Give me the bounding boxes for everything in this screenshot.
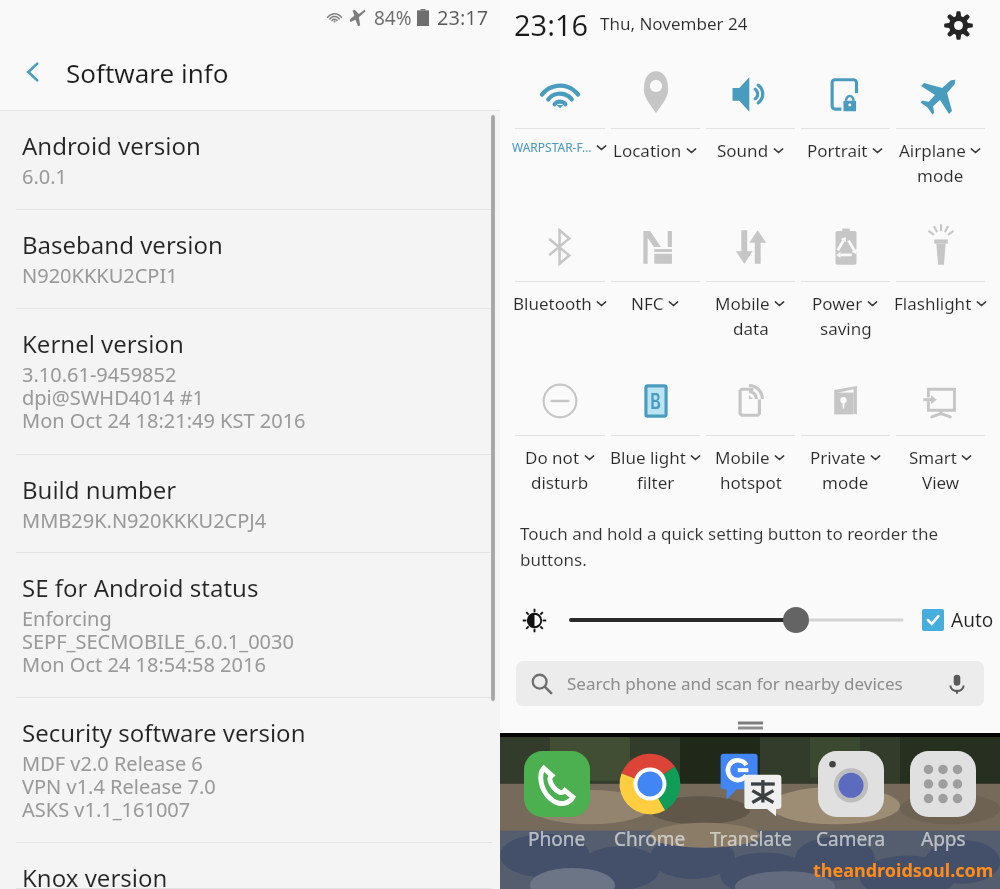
staticText: Security software version — [22, 716, 306, 749]
staticText: Mobile — [715, 292, 770, 315]
button[interactable]: Apps — [910, 751, 976, 852]
staticText: Sound — [717, 139, 769, 162]
staticText: WARPSTAR-F… — [512, 139, 592, 155]
staticText: Auto — [951, 607, 994, 633]
staticText: hotspot — [720, 471, 782, 494]
staticText: Blue light — [610, 446, 686, 469]
button[interactable]: Settings — [940, 7, 976, 43]
button[interactable]: Portrait — [798, 58, 893, 211]
button[interactable]: Kernel version — [0, 309, 500, 455]
staticText: Kernel version — [22, 327, 184, 360]
other: Back — [0, 34, 66, 110]
staticText: Software info — [66, 55, 229, 90]
staticText: 6.0.1 — [22, 163, 68, 190]
staticText: Bluetooth — [513, 292, 592, 315]
staticText: Camera — [816, 826, 886, 852]
staticText: Knox version — [22, 861, 168, 889]
staticText: SE for Android status — [22, 571, 259, 604]
staticText: Search phone and scan for nearby devices — [567, 672, 903, 695]
staticText: Location — [613, 139, 682, 162]
button[interactable]: Blue light — [608, 365, 703, 518]
staticText: Mobile — [715, 446, 770, 469]
staticText: Private — [810, 446, 866, 469]
staticText: View — [922, 471, 960, 494]
button[interactable]: Chrome — [614, 751, 686, 852]
staticText: dpi@SWHD4014 #1 — [22, 384, 205, 411]
staticText: Touch and hold a quick setting button to… — [520, 522, 986, 571]
staticText: Enforcing — [22, 605, 112, 632]
staticText: Android version — [22, 129, 201, 162]
button[interactable]: Search phone and scan for nearby devices — [516, 661, 984, 706]
staticText: Smart — [909, 446, 957, 469]
staticText: Mon Oct 24 18:54:58 2016 — [22, 651, 266, 678]
button[interactable]: Smart — [893, 365, 988, 518]
button[interactable]: Location — [608, 58, 703, 211]
staticText: filter — [637, 471, 675, 494]
staticText: Build number — [22, 473, 177, 506]
button[interactable]: Power — [798, 211, 893, 364]
button[interactable]: Android version — [0, 111, 500, 210]
button[interactable]: Do not — [512, 365, 608, 518]
staticText: ASKS v1.1_161007 — [22, 796, 191, 823]
staticText: MDF v2.0 Release 6 — [22, 750, 203, 777]
button[interactable]: Build number — [0, 455, 500, 553]
staticText: 23:16 — [514, 5, 589, 44]
staticText: saving — [820, 317, 872, 340]
staticText: Thu, November 24 — [600, 12, 748, 35]
staticText: disturb — [531, 471, 589, 494]
button[interactable]: Auto — [922, 607, 994, 633]
button[interactable]: NFC — [608, 211, 703, 364]
button[interactable]: WARPSTAR-F… — [512, 58, 608, 211]
staticText: Portrait — [807, 139, 868, 162]
staticText: mode — [822, 471, 869, 494]
button[interactable]: Flashlight — [893, 211, 988, 364]
staticText: 84% — [374, 5, 412, 31]
button[interactable]: SE for Android status — [0, 553, 500, 698]
button[interactable]: Back — [0, 34, 500, 110]
button[interactable]: Brightness slider — [565, 601, 910, 639]
staticText: 3.10.61-9459852 — [22, 361, 177, 388]
button[interactable]: Phone — [524, 751, 590, 852]
staticText: Baseband version — [22, 228, 223, 261]
staticText: MMB29K.N920KKKU2CPJ4 — [22, 507, 267, 534]
staticText: Mon Oct 24 18:21:49 KST 2016 — [22, 407, 306, 434]
staticText: mode — [917, 164, 964, 187]
staticText: 23:17 — [437, 4, 489, 31]
staticText: Power — [812, 292, 863, 315]
button[interactable]: Translate — [710, 751, 792, 852]
staticText: NFC — [631, 292, 664, 315]
staticText: SEPF_SECMOBILE_6.0.1_0030 — [22, 628, 294, 655]
staticText: Apps — [921, 826, 966, 852]
button[interactable]: Camera — [816, 751, 886, 852]
button[interactable]: Mobile — [703, 211, 798, 364]
staticText: theandroidsoul.com — [813, 858, 994, 883]
staticText: Do not — [525, 446, 580, 469]
staticText: Airplane — [899, 139, 966, 162]
button[interactable]: Bluetooth — [512, 211, 608, 364]
staticText: N920KKKU2CPI1 — [22, 262, 178, 289]
staticText: VPN v1.4 Release 7.0 — [22, 773, 216, 800]
button[interactable]: Mobile — [703, 365, 798, 518]
staticText: Translate — [710, 826, 792, 852]
button[interactable]: Private — [798, 365, 893, 518]
staticText: Flashlight — [894, 292, 972, 315]
staticText: data — [733, 317, 769, 340]
button[interactable]: Knox version — [0, 843, 500, 889]
button[interactable]: Baseband version — [0, 210, 500, 309]
button[interactable]: Security software version — [0, 698, 500, 843]
button[interactable]: Airplane — [893, 58, 988, 211]
staticText: Chrome — [614, 826, 686, 852]
button[interactable]: Brightness — [521, 607, 548, 634]
staticText: Phone — [528, 826, 586, 852]
button[interactable]: Sound — [703, 58, 798, 211]
